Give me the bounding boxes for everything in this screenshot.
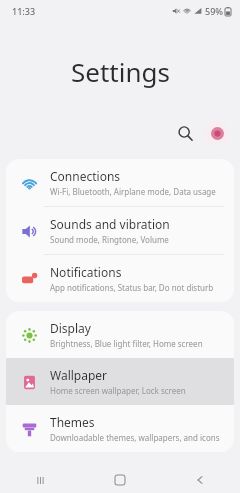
button[interactable]: Back: [160, 467, 240, 493]
staticText: Themes: [50, 414, 95, 430]
button[interactable]: Display: [6, 311, 234, 358]
button[interactable]: Wallpaper: [6, 358, 234, 405]
staticText: Notifications: [50, 264, 122, 280]
staticText: Brightness, Blue light filter, Home scre…: [50, 338, 203, 349]
button[interactable]: Notifications: [6, 255, 234, 302]
staticText: Settings: [71, 54, 170, 89]
staticText: Sound mode, Ringtone, Volume: [50, 234, 169, 245]
staticText: Sounds and vibration: [50, 216, 170, 232]
button[interactable]: Sounds and vibration: [6, 207, 234, 254]
button[interactable]: Recents: [0, 467, 80, 493]
button[interactable]: Search: [170, 118, 200, 148]
staticText: Downloadable themes, wallpapers, and ico…: [50, 432, 220, 443]
button[interactable]: Home: [80, 467, 160, 493]
staticText: 59%: [205, 5, 223, 17]
staticText: Display: [50, 320, 91, 336]
button[interactable]: Connections: [6, 159, 234, 206]
button[interactable]: Themes: [6, 405, 234, 452]
staticText: Connections: [50, 168, 121, 184]
staticText: App notifications, Status bar, Do not di…: [50, 282, 214, 293]
staticText: Wallpaper: [50, 367, 108, 383]
staticText: 11:33: [12, 5, 36, 17]
staticText: Home screen wallpaper, Lock screen wallp…: [50, 385, 222, 396]
staticText: Wi-Fi, Bluetooth, Airplane mode, Data us…: [50, 186, 216, 197]
button[interactable]: Account: [204, 120, 230, 146]
